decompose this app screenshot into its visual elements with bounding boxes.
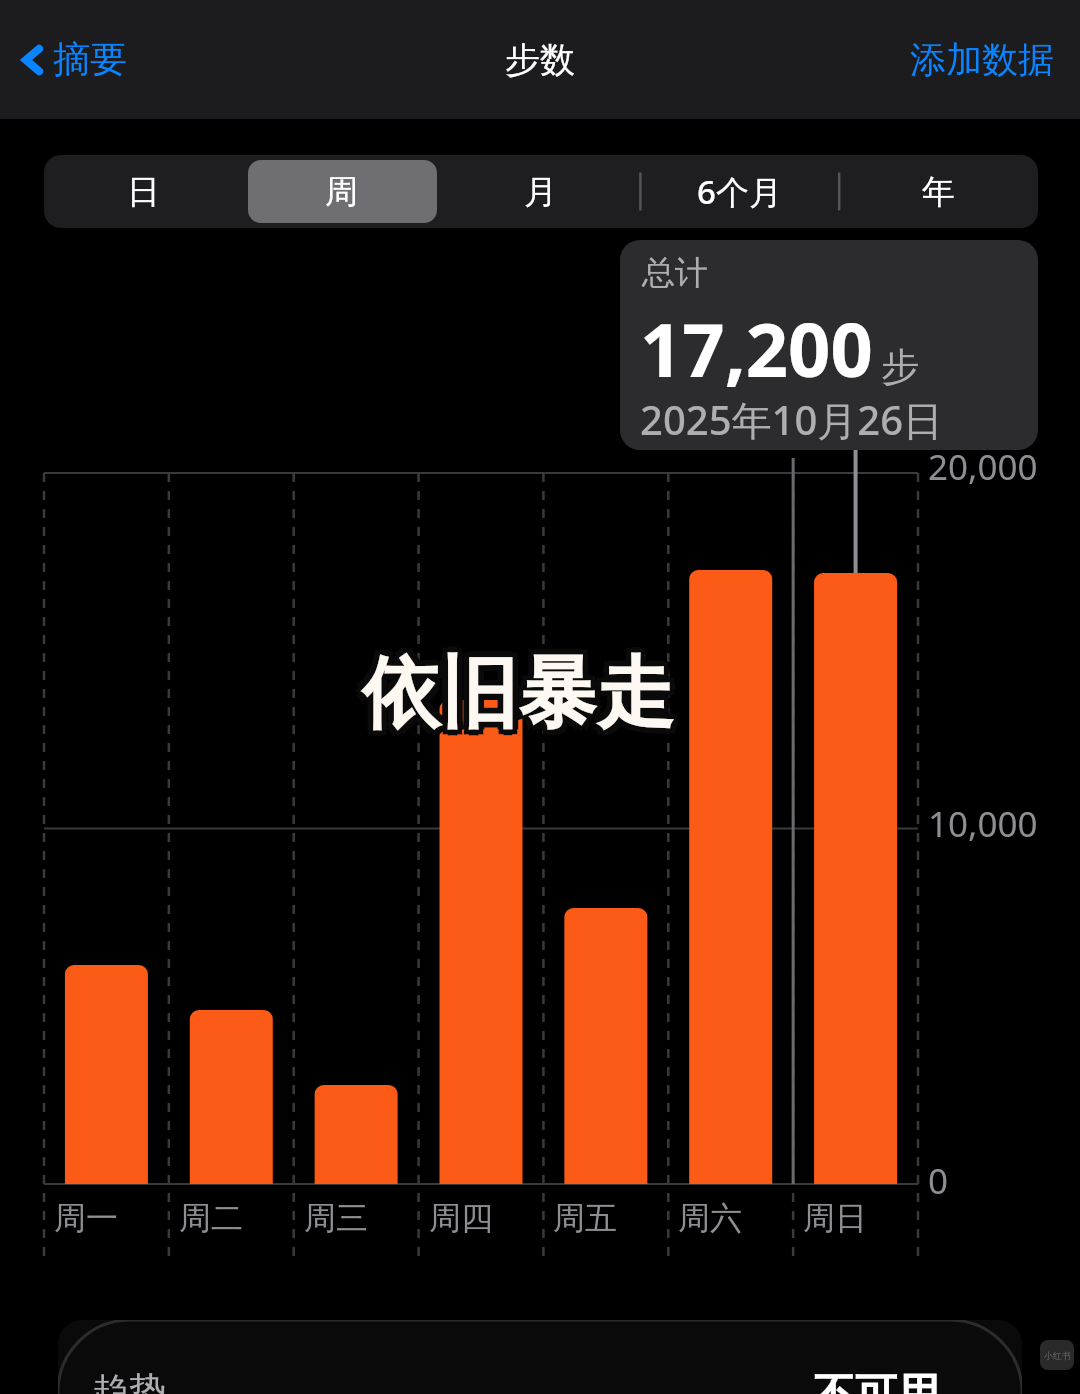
staticText: 6个月	[697, 169, 782, 214]
staticText: 20,000	[928, 443, 1038, 491]
staticText: 周六	[678, 1198, 742, 1238]
staticText: 17,200	[640, 298, 873, 399]
button[interactable]: 年	[839, 155, 1038, 228]
staticText: 周	[325, 171, 358, 213]
staticText: 周日	[803, 1198, 867, 1238]
staticText: 依旧暴走	[367, 650, 679, 748]
button[interactable]: 摘要	[14, 30, 135, 89]
staticText: 月	[524, 171, 557, 213]
staticText: 依旧暴走	[356, 645, 668, 743]
staticText: 依旧暴走	[362, 639, 674, 737]
staticText: 步	[881, 343, 919, 391]
staticText: 周一	[54, 1198, 118, 1238]
button[interactable]: 6个月	[640, 155, 839, 228]
button[interactable]: 周	[242, 155, 441, 228]
staticText: 周三	[304, 1198, 368, 1238]
staticText: 不可用	[813, 1368, 939, 1394]
staticText: 依旧暴走	[368, 645, 680, 743]
button[interactable]: 添加数据	[904, 31, 1060, 88]
staticText: 依旧暴走	[362, 645, 674, 743]
button[interactable]: 日	[44, 155, 242, 228]
staticText: 2025年10月26日	[640, 392, 944, 447]
staticText: 趋势	[92, 1368, 166, 1394]
staticText: 0	[928, 1157, 949, 1205]
staticText: 周四	[429, 1198, 493, 1238]
staticText: 依旧暴走	[367, 640, 679, 738]
button[interactable]: 趋势	[58, 1320, 1022, 1394]
staticText: 添加数据	[910, 37, 1054, 82]
staticText: 周五	[553, 1198, 617, 1238]
staticText: 小红书	[1044, 1350, 1071, 1361]
staticText: 年	[922, 171, 955, 213]
staticText: 依旧暴走	[357, 640, 669, 738]
staticText: 10,000	[928, 800, 1038, 848]
staticText: 总计	[642, 252, 708, 294]
staticText: 周二	[179, 1198, 243, 1238]
staticText: 步数	[505, 38, 575, 82]
staticText: 摘要	[53, 36, 127, 83]
staticText: 依旧暴走	[362, 651, 674, 749]
staticText: 日	[127, 171, 160, 213]
staticText: 依旧暴走	[357, 650, 669, 748]
button[interactable]: 月	[441, 155, 640, 228]
